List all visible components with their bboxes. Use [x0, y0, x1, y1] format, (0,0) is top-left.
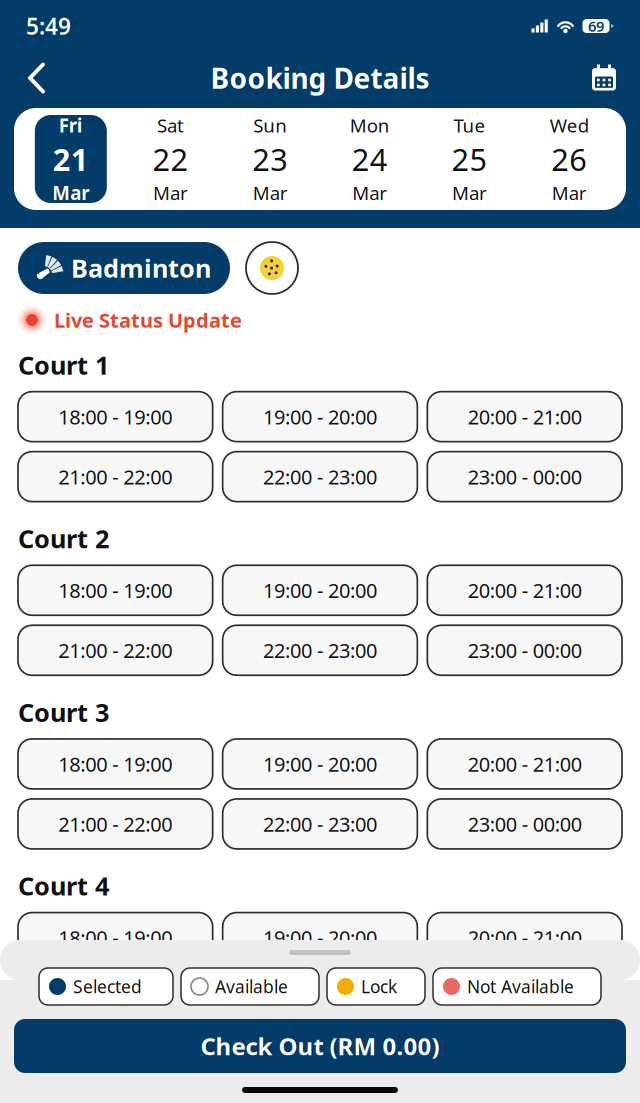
- button[interactable]: 19:00 - 20:00: [223, 739, 417, 789]
- staticText: Available: [215, 975, 288, 998]
- button[interactable]: Not Available: [433, 968, 601, 1005]
- staticText: 22:00 - 23:00: [263, 463, 377, 490]
- staticText: Fri: [59, 113, 83, 138]
- staticText: Mon: [350, 113, 390, 138]
- staticText: Lock: [361, 975, 397, 998]
- button[interactable]: 18:00 - 19:00: [18, 739, 213, 789]
- button[interactable]: Sat: [121, 115, 220, 203]
- staticText: Court 2: [18, 522, 109, 555]
- staticText: 19:00 - 20:00: [263, 403, 377, 430]
- button[interactable]: 21:00 - 22:00: [18, 973, 213, 1023]
- staticText: Check Out (RM 0.00): [200, 1030, 439, 1062]
- button[interactable]: Tue: [420, 115, 519, 203]
- staticText: 5:49: [26, 11, 71, 41]
- staticText: Not Available: [467, 975, 574, 998]
- staticText: Court 4: [18, 869, 109, 902]
- button[interactable]: Wed: [519, 115, 619, 203]
- button[interactable]: 19:00 - 20:00: [223, 913, 417, 963]
- button[interactable]: 23:00 - 00:00: [427, 973, 622, 1023]
- staticText: 22:00 - 23:00: [263, 984, 377, 1011]
- staticText: Court 3: [18, 695, 109, 729]
- button[interactable]: 20:00 - 21:00: [427, 739, 622, 789]
- button[interactable]: 20:00 - 21:00: [427, 565, 622, 615]
- button[interactable]: 21:00 - 22:00: [18, 625, 213, 675]
- button[interactable]: 19:00 - 20:00: [223, 392, 417, 442]
- staticText: Court 1: [18, 348, 109, 382]
- button[interactable]: 21:00 - 22:00: [18, 452, 213, 502]
- staticText: 18:00 - 19:00: [58, 751, 172, 777]
- button[interactable]: Badminton: [18, 242, 230, 294]
- staticText: 19:00 - 20:00: [263, 751, 377, 777]
- button[interactable]: Selected: [39, 968, 173, 1005]
- button[interactable]: Pickleball: [246, 242, 298, 294]
- staticText: Wed: [550, 113, 589, 138]
- button[interactable]: Mon: [320, 115, 420, 203]
- button[interactable]: Calendar: [582, 56, 626, 100]
- staticText: Mar: [452, 180, 487, 205]
- staticText: Sun: [253, 113, 287, 138]
- staticText: 23:00 - 00:00: [468, 984, 582, 1011]
- staticText: 23:00 - 00:00: [468, 637, 582, 664]
- staticText: 25: [451, 139, 487, 179]
- staticText: Selected: [73, 975, 142, 998]
- staticText: Live Status Update: [54, 307, 242, 333]
- button[interactable]: Sun: [220, 115, 320, 203]
- staticText: 23: [252, 139, 288, 179]
- staticText: Sat: [157, 113, 184, 138]
- button[interactable]: Fri: [21, 115, 121, 203]
- staticText: 26: [551, 139, 587, 179]
- button[interactable]: 18:00 - 19:00: [18, 913, 213, 963]
- staticText: Mar: [52, 180, 89, 205]
- button[interactable]: 18:00 - 19:00: [18, 392, 213, 442]
- staticText: 22:00 - 23:00: [263, 637, 377, 664]
- button[interactable]: 23:00 - 00:00: [427, 452, 622, 502]
- staticText: 21:00 - 22:00: [58, 811, 172, 837]
- staticText: 20:00 - 21:00: [468, 751, 582, 777]
- button[interactable]: 22:00 - 23:00: [223, 973, 417, 1023]
- staticText: 22: [152, 139, 188, 179]
- staticText: 21:00 - 22:00: [58, 637, 172, 664]
- staticText: 19:00 - 20:00: [263, 924, 377, 951]
- button[interactable]: 23:00 - 00:00: [427, 625, 622, 675]
- button[interactable]: 21:00 - 22:00: [18, 799, 213, 849]
- button[interactable]: 22:00 - 23:00: [223, 799, 417, 849]
- staticText: 20:00 - 21:00: [468, 577, 582, 604]
- staticText: 20:00 - 21:00: [468, 403, 582, 430]
- staticText: Mar: [352, 180, 387, 205]
- staticText: 18:00 - 19:00: [58, 577, 172, 604]
- staticText: 18:00 - 19:00: [58, 403, 172, 430]
- button[interactable]: Lock: [327, 968, 425, 1005]
- button[interactable]: 22:00 - 23:00: [223, 625, 417, 675]
- button[interactable]: 22:00 - 23:00: [223, 452, 417, 502]
- staticText: Badminton: [71, 251, 211, 285]
- button[interactable]: Back: [14, 56, 58, 100]
- staticText: 20:00 - 21:00: [468, 924, 582, 951]
- staticText: 69: [588, 16, 604, 36]
- staticText: 24: [352, 139, 388, 179]
- staticText: 18:00 - 19:00: [58, 924, 172, 951]
- staticText: 23:00 - 00:00: [468, 811, 582, 837]
- staticText: Tue: [453, 113, 485, 138]
- staticText: 21:00 - 22:00: [58, 463, 172, 490]
- button[interactable]: 20:00 - 21:00: [427, 392, 622, 442]
- button[interactable]: Check Out (RM 0.00): [14, 1019, 626, 1073]
- staticText: 21:00 - 22:00: [58, 984, 172, 1011]
- staticText: 22:00 - 23:00: [263, 811, 377, 837]
- button[interactable]: 19:00 - 20:00: [223, 565, 417, 615]
- button[interactable]: Available: [181, 968, 319, 1005]
- staticText: Mar: [552, 180, 587, 205]
- staticText: 21: [53, 139, 89, 179]
- staticText: Booking Details: [210, 59, 429, 97]
- button[interactable]: 23:00 - 00:00: [427, 799, 622, 849]
- button[interactable]: 18:00 - 19:00: [18, 565, 213, 615]
- staticText: 19:00 - 20:00: [263, 577, 377, 604]
- staticText: Mar: [253, 180, 288, 205]
- button[interactable]: 20:00 - 21:00: [427, 913, 622, 963]
- staticText: Mar: [153, 180, 188, 205]
- staticText: 23:00 - 00:00: [468, 463, 582, 490]
